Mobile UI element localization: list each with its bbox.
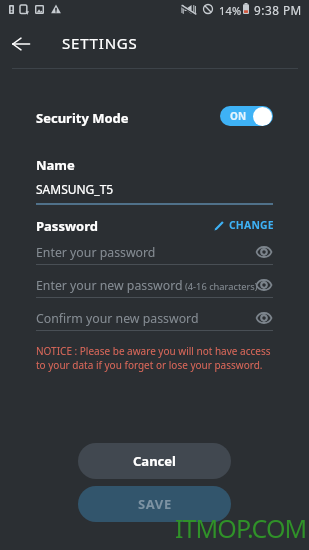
staticText: Name bbox=[36, 156, 75, 174]
staticText: Enter your password bbox=[36, 244, 156, 261]
staticText: ON bbox=[230, 109, 247, 123]
other: Show password bbox=[256, 310, 272, 326]
staticText: SETTINGS bbox=[62, 33, 138, 53]
other: Show password bbox=[256, 244, 272, 260]
staticText: 9:38 PM bbox=[254, 2, 302, 18]
staticText: CHANGE bbox=[229, 218, 274, 232]
button[interactable]: Confirm your new password bbox=[36, 306, 273, 330]
staticText: ITMOP.COM bbox=[175, 511, 307, 545]
staticText: 14% bbox=[219, 3, 242, 18]
staticText: NOTICE : Please be aware you will not ha… bbox=[36, 344, 271, 358]
button[interactable]: SAVE bbox=[78, 486, 231, 522]
staticText: SAVE bbox=[138, 495, 172, 513]
staticText: Confirm your new password bbox=[36, 310, 199, 327]
staticText: (4-16 characters) bbox=[185, 280, 258, 293]
staticText: Cancel bbox=[133, 452, 176, 470]
button[interactable]: Cancel bbox=[78, 443, 231, 479]
staticText: Security Mode bbox=[36, 109, 129, 127]
button[interactable]: Back bbox=[12, 35, 30, 53]
button[interactable]: CHANGE bbox=[214, 215, 274, 235]
staticText: SAMSUNG_T5 bbox=[36, 181, 114, 197]
button[interactable]: Enter your password bbox=[36, 240, 273, 264]
button[interactable]: ON bbox=[220, 106, 273, 126]
staticText: Enter your new password bbox=[36, 277, 183, 294]
staticText: to your data if you forget or lose your … bbox=[36, 358, 263, 372]
button[interactable]: Enter your new password bbox=[36, 273, 273, 297]
staticText: Password bbox=[36, 217, 98, 235]
other: Show password bbox=[256, 277, 272, 293]
